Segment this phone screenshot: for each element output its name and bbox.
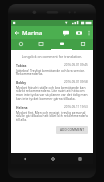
button[interactable]: Home <box>39 153 66 164</box>
staticText: 2016.05.11 19:53 <box>64 105 88 109</box>
button[interactable]: Helena <box>16 105 88 122</box>
button[interactable]: Photos <box>31 39 51 49</box>
staticText: Helena <box>16 105 28 109</box>
button[interactable]: Comments <box>51 39 72 49</box>
button[interactable]: Back <box>11 153 39 164</box>
staticText: Bobby <box>16 80 27 84</box>
staticText: Jättebra! Trevligt bemötande och bra ser… <box>16 68 88 76</box>
button[interactable]: More options <box>85 26 93 39</box>
button[interactable]: Recent apps <box>66 153 93 164</box>
button[interactable]: Tobias <box>16 63 88 76</box>
button[interactable]: ADD COMMENT <box>56 126 88 134</box>
button[interactable]: Bobby <box>16 80 88 101</box>
staticText: Marina <box>22 29 59 37</box>
staticText: 2016.05.01 09:58 <box>64 80 88 84</box>
button[interactable]: Info <box>11 39 31 49</box>
staticText: Tobias <box>16 63 27 67</box>
button[interactable]: Back <box>11 26 22 39</box>
button[interactable]: Map <box>72 39 93 49</box>
button[interactable]: Messages <box>59 26 72 39</box>
staticText: Mycket fint. Men och mysigt, trevlig per… <box>16 110 88 122</box>
staticText: Longclick on comment for translation. <box>16 54 88 59</box>
staticText: ADD COMMENT <box>60 128 84 132</box>
button[interactable]: Camera <box>72 26 85 39</box>
staticText: 2016.05.01 09:45 <box>64 63 88 67</box>
staticText: Mycket fräscht ställe och bra bemötande … <box>16 85 88 101</box>
